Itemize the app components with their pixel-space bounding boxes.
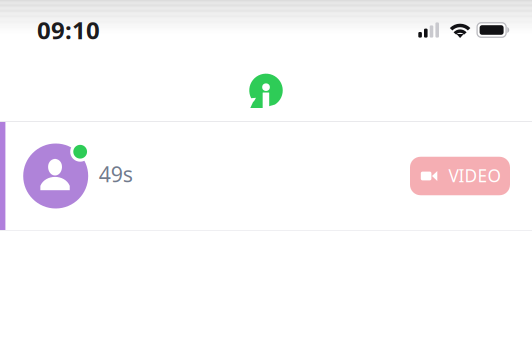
- staticText: 09:10: [37, 14, 100, 46]
- button[interactable]: 49s: [0, 122, 532, 230]
- button[interactable]: VIDEO: [410, 157, 510, 195]
- staticText: 49s: [99, 160, 133, 188]
- staticText: VIDEO: [448, 164, 501, 187]
